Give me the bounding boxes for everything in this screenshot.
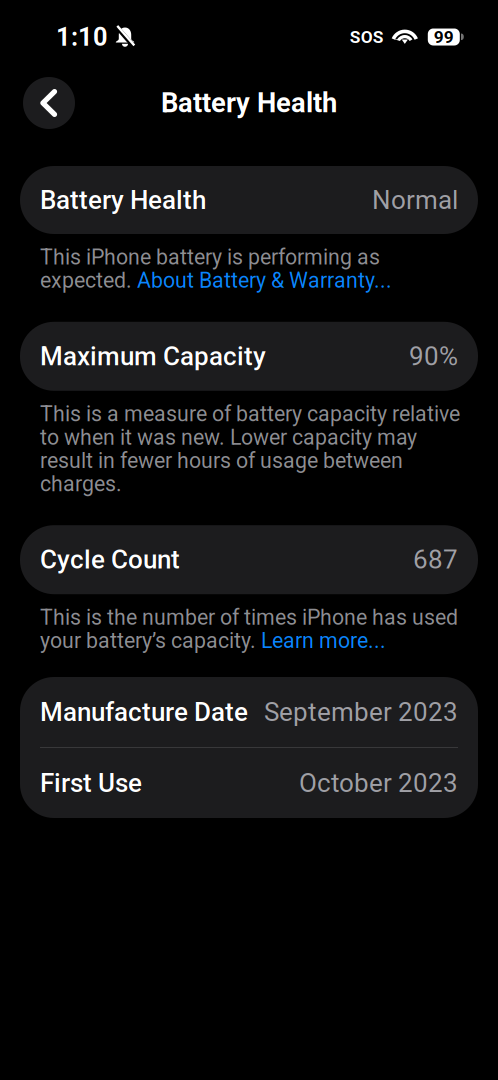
staticText: October 2023	[299, 768, 458, 798]
staticText: 90%	[409, 341, 458, 372]
staticText: SOS	[350, 27, 384, 47]
staticText: Normal	[372, 185, 458, 215]
staticText: to when it was new. Lower capacity may	[40, 425, 417, 450]
staticText: Learn more...	[261, 628, 386, 653]
staticText: 1:10	[56, 22, 108, 52]
staticText: This is the number of times iPhone has u…	[40, 605, 458, 630]
staticText: About Battery & Warranty...	[137, 268, 392, 293]
staticText: Cycle Count	[40, 544, 180, 575]
staticText: result in fewer hours of usage between	[40, 448, 403, 473]
staticText: This is a measure of battery capacity re…	[40, 402, 460, 427]
button[interactable]: Battery Health	[20, 166, 478, 234]
button[interactable]: Back	[23, 77, 75, 129]
staticText: 99	[434, 27, 454, 47]
staticText: September 2023	[264, 697, 458, 727]
staticText: your battery’s capacity.	[40, 628, 261, 653]
staticText: First Use	[40, 768, 142, 798]
button[interactable]: First Use	[20, 748, 478, 818]
staticText: Maximum Capacity	[40, 341, 266, 372]
staticText: 687	[413, 544, 458, 575]
button[interactable]: Manufacture Date	[20, 677, 478, 747]
staticText: charges.	[40, 471, 122, 496]
staticText: expected.	[40, 268, 137, 293]
staticText: Manufacture Date	[40, 697, 248, 727]
staticText: Battery Health	[161, 87, 337, 119]
staticText: This iPhone battery is performing as	[40, 245, 380, 270]
staticText: Battery Health	[40, 185, 206, 215]
